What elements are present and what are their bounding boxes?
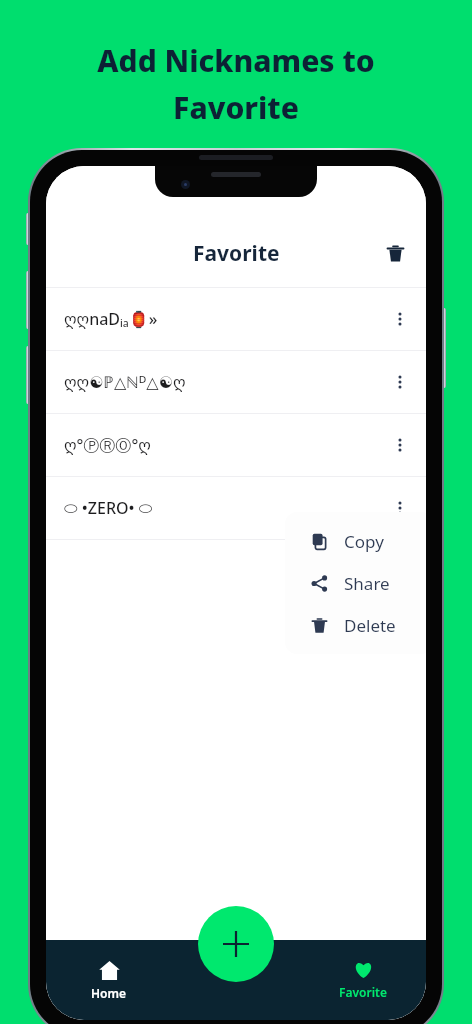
button[interactable]: ღ°ⓅⓇⓄ°ღ — [46, 414, 426, 476]
staticText: Favorite — [193, 239, 280, 268]
staticText: ⬭ •ZERO• ⬭ — [64, 497, 380, 519]
staticText: ღ°ⓅⓇⓄ°ღ — [64, 434, 380, 456]
button[interactable]: More options — [380, 488, 420, 528]
staticText: Home — [91, 985, 127, 1001]
button[interactable]: Delete all — [378, 236, 412, 270]
button[interactable]: ⬭ •ZERO• ⬭ — [46, 477, 426, 539]
staticText: Favorite — [339, 984, 387, 1000]
staticText: Delete — [344, 614, 396, 637]
button[interactable]: ღღnaDᵢₐ🏮» — [46, 288, 426, 350]
staticText: Favorite — [173, 87, 299, 128]
staticText: ღღ☯ℙ△ℕᴰ△☯ღ — [64, 371, 380, 393]
button[interactable]: Share — [285, 562, 426, 604]
staticText: ღღnaDᵢₐ🏮» — [64, 308, 380, 330]
button[interactable]: Copy — [285, 520, 426, 562]
button[interactable]: Delete — [285, 604, 426, 646]
staticText: Add Nicknames to — [97, 40, 375, 81]
button[interactable]: More options — [380, 362, 420, 402]
button[interactable]: Add nickname — [198, 906, 274, 982]
staticText: Copy — [344, 530, 384, 553]
button[interactable]: Favorite — [325, 954, 401, 1006]
button[interactable]: More options — [380, 299, 420, 339]
staticText: Share — [344, 572, 390, 595]
button[interactable]: Home — [73, 954, 145, 1007]
button[interactable]: ღღ☯ℙ△ℕᴰ△☯ღ — [46, 351, 426, 413]
button[interactable]: More options — [380, 425, 420, 465]
